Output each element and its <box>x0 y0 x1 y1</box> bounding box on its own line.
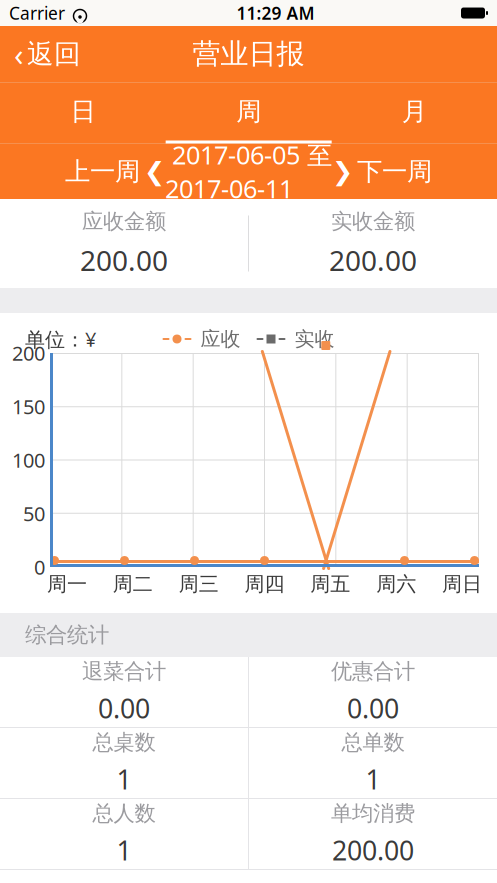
button[interactable]: 月 <box>331 82 497 143</box>
button[interactable]: 上一周 <box>65 148 165 195</box>
staticText: 周六 <box>376 572 416 596</box>
staticText: 1 <box>365 761 380 797</box>
staticText: 返回 <box>27 38 81 70</box>
staticText: 200 <box>12 340 45 366</box>
staticText: 周一 <box>47 572 87 596</box>
staticText: 综合统计 <box>25 622 109 648</box>
staticText: 应收 <box>194 327 240 351</box>
staticText: 2017-06-05 至 2017-06-11 <box>165 138 332 205</box>
staticText: 退菜合计 <box>82 658 166 684</box>
staticText: 总单数 <box>341 729 404 755</box>
staticText: 优惠合计 <box>331 658 415 684</box>
staticText: 50 <box>23 500 45 527</box>
button[interactable]: ❯ <box>332 148 432 195</box>
staticText: 0.00 <box>98 690 150 726</box>
staticText: 200.00 <box>80 241 168 279</box>
button[interactable]: ‹ <box>0 26 95 82</box>
staticText: 周 <box>236 96 261 127</box>
staticText: 周五 <box>310 572 350 596</box>
staticText: 11:29 AM <box>236 1 314 24</box>
staticText: 上一周 <box>65 156 140 187</box>
staticText: 单位：¥ <box>25 326 96 352</box>
button[interactable]: 日 <box>0 82 166 143</box>
staticText: 周日 <box>442 572 482 596</box>
staticText: 总桌数 <box>92 729 155 755</box>
staticText: 总人数 <box>92 800 155 826</box>
staticText: 周四 <box>244 572 284 596</box>
staticText: 150 <box>12 393 45 420</box>
staticText: 日 <box>70 96 95 127</box>
staticText: 周三 <box>179 572 219 596</box>
staticText: 单均消费 <box>331 800 415 826</box>
staticText: 周二 <box>113 572 153 596</box>
staticText: 实收金额 <box>331 208 415 234</box>
staticText: ❯ <box>332 157 353 186</box>
staticText: 应收金额 <box>82 208 166 234</box>
staticText: 100 <box>12 447 45 473</box>
staticText: 200.00 <box>329 241 417 279</box>
staticText: 1 <box>116 832 131 868</box>
staticText: 月 <box>402 96 427 127</box>
staticText: 0 <box>34 554 45 580</box>
staticText: 200.00 <box>332 832 414 868</box>
staticText: ❮ <box>144 157 165 186</box>
staticText: 0.00 <box>347 690 399 726</box>
staticText: Carrier <box>9 1 65 24</box>
staticText: 营业日报 <box>192 37 304 71</box>
staticText: 下一周 <box>357 156 432 187</box>
staticText: 1 <box>116 761 131 797</box>
staticText: ‹ <box>14 34 24 74</box>
button[interactable]: 周 <box>166 82 331 143</box>
staticText: 实收 <box>288 327 334 351</box>
